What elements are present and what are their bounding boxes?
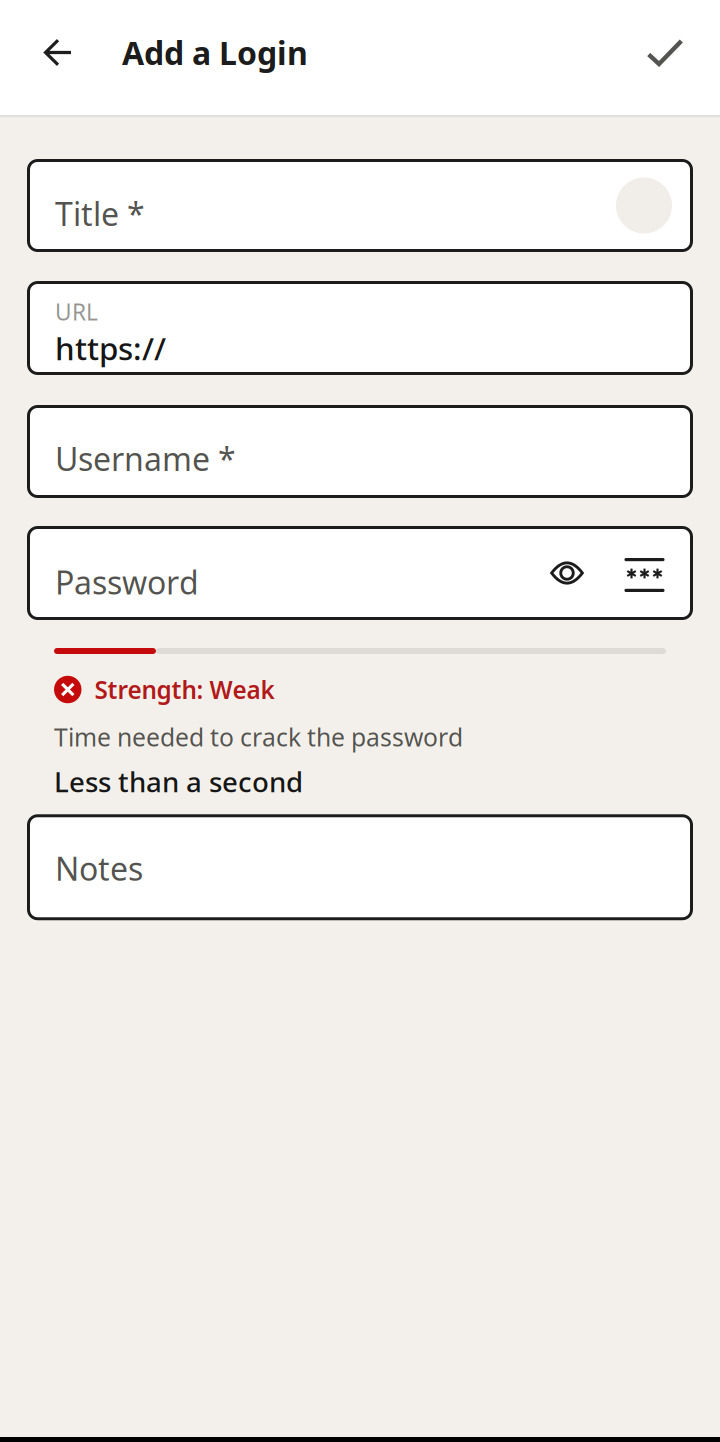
staticText: URL: [55, 297, 98, 327]
button[interactable]: Back: [31, 9, 85, 95]
staticText: Username *: [55, 437, 236, 480]
button[interactable]: Username *: [27, 405, 693, 498]
staticText: https://: [55, 327, 166, 369]
button[interactable]: Show password: [540, 529, 594, 617]
staticText: Strength: Weak: [94, 673, 274, 706]
staticText: Title *: [55, 192, 145, 235]
staticText: Notes: [55, 847, 143, 889]
staticText: Time needed to crack the password: [54, 720, 463, 754]
button[interactable]: Notes: [27, 814, 693, 920]
button[interactable]: Save: [637, 9, 693, 95]
staticText: Less than a second: [54, 763, 303, 800]
button[interactable]: Generate password: [621, 529, 668, 617]
button[interactable]: Title *: [27, 159, 693, 252]
staticText: Password: [55, 561, 199, 603]
button[interactable]: URL: [27, 281, 693, 375]
staticText: Add a Login: [122, 31, 308, 74]
